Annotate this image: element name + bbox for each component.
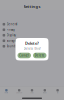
button[interactable]: Home bbox=[0, 86, 13, 96]
staticText: General bbox=[6, 22, 17, 26]
staticText: Search bbox=[16, 92, 22, 94]
staticText: Inbox bbox=[43, 92, 47, 94]
button[interactable]: Inbox bbox=[38, 86, 51, 96]
staticText: Delete this? bbox=[23, 47, 40, 50]
button[interactable]: Display bbox=[0, 32, 64, 38]
button[interactable]: Me bbox=[51, 86, 64, 96]
staticText: Delete bbox=[35, 54, 45, 57]
staticText: Home bbox=[4, 92, 8, 94]
button[interactable]: Add bbox=[26, 86, 38, 96]
button[interactable]: Search bbox=[13, 86, 26, 96]
button[interactable]: Storage bbox=[0, 38, 64, 43]
button[interactable]: Cancel bbox=[17, 53, 31, 58]
staticText: Delete? bbox=[25, 41, 39, 46]
staticText: Storage bbox=[6, 39, 16, 42]
staticText: Privacy bbox=[6, 28, 14, 31]
button[interactable]: Sounds bbox=[0, 43, 64, 49]
staticText: Settings bbox=[23, 4, 40, 9]
staticText: Sounds bbox=[6, 44, 16, 48]
staticText: Add bbox=[30, 92, 33, 94]
staticText: Me bbox=[57, 92, 59, 94]
button[interactable]: Delete bbox=[33, 53, 46, 58]
button[interactable]: Privacy bbox=[0, 27, 64, 32]
staticText: Display bbox=[6, 33, 15, 37]
button[interactable]: General bbox=[0, 21, 64, 27]
staticText: Cancel bbox=[19, 54, 29, 57]
